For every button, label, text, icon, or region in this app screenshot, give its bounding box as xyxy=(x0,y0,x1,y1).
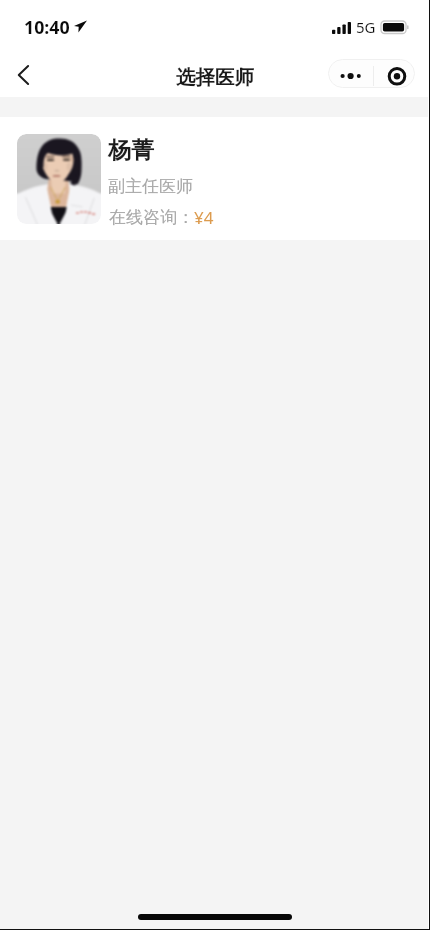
staticText: 10:40 xyxy=(24,15,70,39)
button[interactable]: Close mini program xyxy=(374,59,415,88)
staticText: 杨菁 xyxy=(108,136,154,165)
staticText: 副主任医师 xyxy=(108,176,193,197)
button[interactable]: More options xyxy=(328,59,373,88)
button[interactable]: 杨菁 xyxy=(0,117,430,240)
staticText: 5G xyxy=(356,17,376,37)
staticText: 在线咨询： xyxy=(109,207,194,228)
staticText: ¥4 xyxy=(194,206,214,229)
staticText: 选择医师 xyxy=(176,65,254,90)
button[interactable]: Back xyxy=(4,55,44,95)
